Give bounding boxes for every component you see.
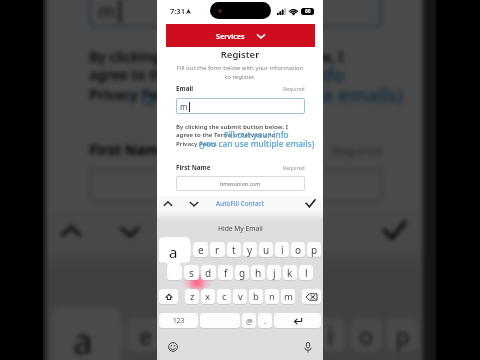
button[interactable]: u [278,318,309,352]
button[interactable]: q [51,318,85,352]
button[interactable]: Emoji [168,342,178,352]
button[interactable]: p [387,318,418,352]
button[interactable]: y [243,242,257,257]
button[interactable]: l [299,265,313,280]
button[interactable]: c [217,289,231,304]
button[interactable]: m [176,98,305,114]
staticText: 7:31 [170,6,185,16]
button[interactable]: q [159,242,174,257]
button[interactable]: m [89,0,382,27]
staticText: f [224,266,228,280]
button[interactable]: Previous field [60,220,82,243]
button[interactable]: Done [305,198,316,209]
button[interactable]: timesunion.com [89,168,382,202]
button[interactable]: Dictation [304,342,312,353]
button[interactable]: w [89,318,123,352]
button[interactable]: w [89,318,123,352]
button[interactable]: Done [382,218,407,243]
staticText: i [328,320,334,352]
button[interactable]: x [201,289,215,304]
button[interactable]: timesunion.com [89,168,382,202]
button[interactable]: b [249,289,263,304]
staticText: a [73,318,94,360]
button[interactable]: n [265,289,279,304]
button[interactable]: Done [382,218,407,243]
button[interactable]: i [314,318,346,352]
staticText: AutoFill Contact [180,220,291,241]
button[interactable] [159,289,178,304]
button[interactable]: q [51,318,85,352]
button[interactable]: Services [166,24,315,47]
button[interactable]: Next field [119,220,141,243]
button[interactable]: w [176,242,191,257]
button[interactable]: e [128,318,162,352]
button[interactable]: o [350,318,382,352]
button[interactable]: v [233,289,247,304]
button[interactable]: g [235,265,249,280]
button[interactable]: m [281,289,295,304]
staticText: q [60,320,76,352]
button[interactable]: i [314,318,346,352]
button[interactable]: h [251,265,265,280]
staticText: (you can use multiple emails) [199,138,315,149]
staticText: a [73,318,94,360]
button[interactable]: r [166,318,200,352]
staticText: e [139,320,153,352]
button[interactable]: i [275,242,289,257]
button[interactable]: o [291,242,305,257]
button[interactable] [302,289,321,304]
button[interactable]: r [210,242,225,257]
button[interactable]: Next field [189,199,199,209]
button[interactable]: p [307,242,321,257]
button[interactable]: d [201,265,216,280]
button[interactable]: Previous field [163,199,173,209]
button[interactable]: y [241,318,273,352]
button[interactable]: f [218,265,233,280]
button[interactable] [274,313,321,328]
button[interactable]: u [278,318,309,352]
button[interactable]: @ [242,313,256,328]
button[interactable]: Next field [119,220,141,243]
button[interactable]: o [350,318,382,352]
button[interactable]: t [227,242,241,257]
button[interactable]: a [167,265,182,280]
button[interactable]: k [283,265,297,280]
button[interactable] [200,313,240,328]
staticText: By clicking the submit button below, I a… [89,46,343,105]
button[interactable]: j [267,265,281,280]
other: Return [274,313,321,329]
button[interactable]: t [205,318,237,352]
staticText: q [60,320,76,352]
button[interactable]: y [241,318,273,352]
button[interactable]: z [185,289,199,304]
button[interactable]: t [205,318,237,352]
button[interactable]: e [128,318,162,352]
button[interactable]: s [184,265,199,280]
staticText: o [295,243,302,257]
staticText: timesunion.com [189,177,282,193]
staticText: y [250,320,264,352]
staticText: Register [157,48,323,61]
staticText: By clicking the submit button below, I a… [176,122,288,148]
staticText: Fill out your info [198,61,346,86]
staticText: x [205,290,211,303]
button[interactable]: p [387,318,418,352]
staticText: t [232,243,236,257]
button[interactable]: 123 [159,313,198,328]
button[interactable]: e [193,242,208,257]
staticText: y [247,243,253,257]
staticText: Email [176,84,194,93]
button[interactable]: . [258,313,272,328]
button[interactable]: Previous field [60,220,82,243]
button[interactable]: timesunion.com [176,176,305,191]
staticText: u [287,320,303,352]
staticText: h [255,266,262,280]
staticText: m [284,290,293,303]
button[interactable]: m [89,0,382,27]
staticText: Fill out the form below with your inform… [169,64,311,80]
button[interactable]: r [166,318,200,352]
button[interactable]: u [259,242,273,257]
staticText: Required [332,143,382,159]
